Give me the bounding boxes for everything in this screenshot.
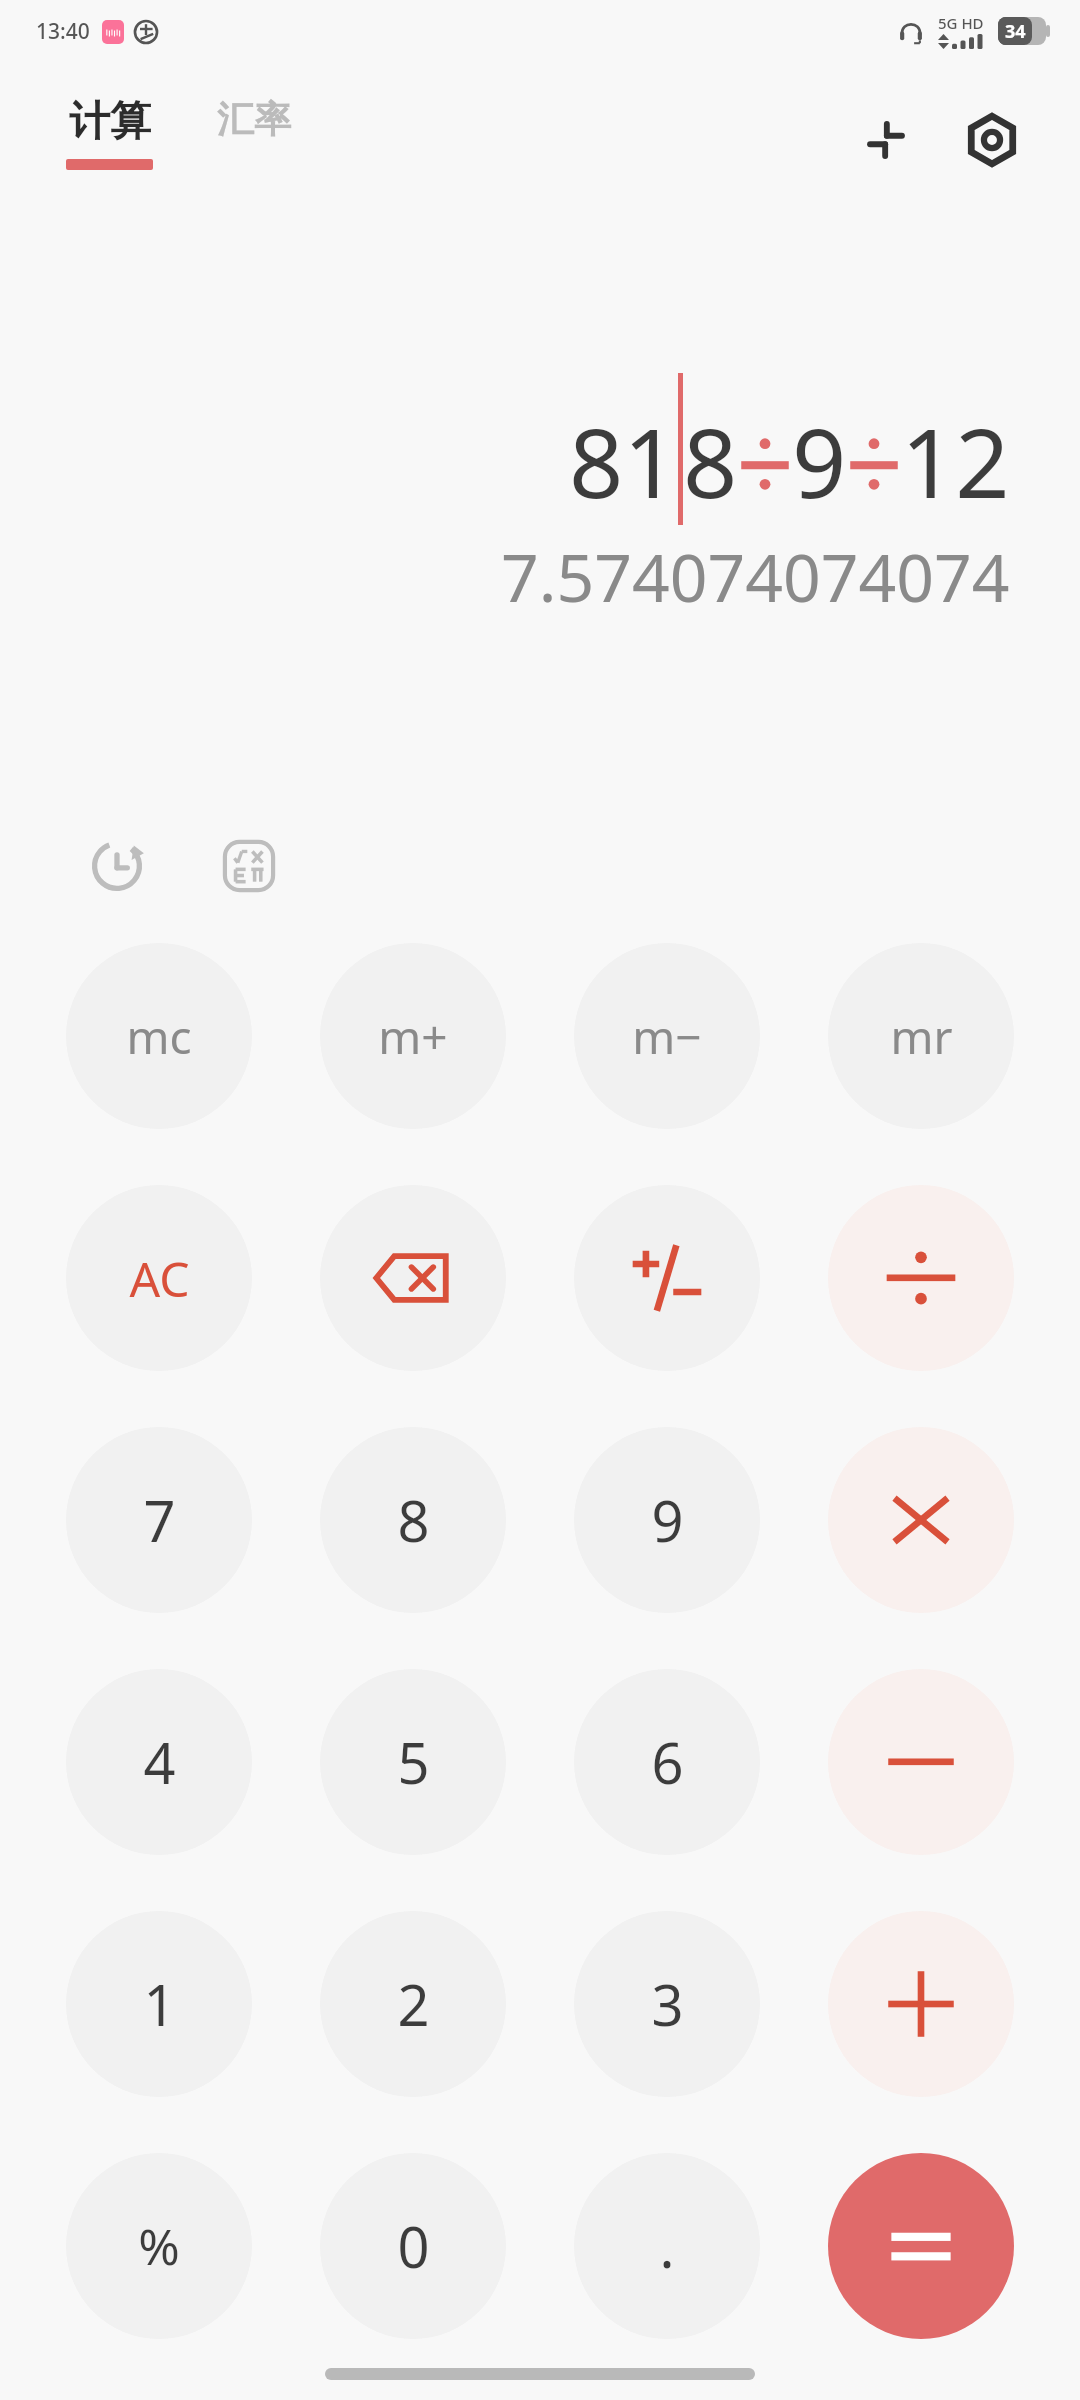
staticText: 34 xyxy=(1005,19,1026,44)
button[interactable]: 7 xyxy=(66,1427,252,1613)
button[interactable]: m− xyxy=(574,943,760,1129)
button[interactable]: 9 xyxy=(574,1427,760,1613)
staticText: 2 xyxy=(397,1966,430,2042)
button[interactable]: m+ xyxy=(320,943,506,1129)
button[interactable]: Collapse xyxy=(850,104,922,176)
staticText: m+ xyxy=(378,1005,448,1068)
button[interactable]: Plus xyxy=(828,1911,1014,2097)
button[interactable]: Equals xyxy=(828,2153,1014,2339)
staticText: 3 xyxy=(651,1966,684,2042)
staticText: m− xyxy=(632,1005,702,1068)
button[interactable]: History xyxy=(78,827,156,905)
staticText: 8 xyxy=(397,1482,430,1558)
button[interactable]: Multiply xyxy=(828,1427,1014,1613)
button[interactable]: Scientific xyxy=(210,827,288,905)
button[interactable]: % xyxy=(66,2153,252,2339)
staticText: 4 xyxy=(143,1724,176,1800)
button[interactable]: Backspace xyxy=(320,1185,506,1371)
button[interactable]: 1 xyxy=(66,1911,252,2097)
staticText: % xyxy=(138,2212,180,2280)
staticText: 9 xyxy=(651,1482,684,1558)
staticText: 7.574074074074 xyxy=(501,531,1010,621)
button[interactable]: 3 xyxy=(574,1911,760,2097)
button[interactable]: mc xyxy=(66,943,252,1129)
staticText: 81 xyxy=(569,396,678,525)
staticText: 9 xyxy=(792,396,847,525)
button[interactable]: 6 xyxy=(574,1669,760,1855)
staticText: 汇率 xyxy=(217,96,291,143)
staticText: 0 xyxy=(397,2208,430,2284)
button[interactable]: 8 xyxy=(320,1427,506,1613)
staticText: 8 xyxy=(683,396,738,525)
button[interactable]: 计算 xyxy=(66,96,153,170)
button[interactable]: Divide xyxy=(828,1185,1014,1371)
staticText: 5 xyxy=(397,1724,430,1800)
staticText: 计算 xyxy=(69,96,151,148)
staticText: 12 xyxy=(901,396,1010,525)
button[interactable]: Plus minus xyxy=(574,1185,760,1371)
staticText: 1 xyxy=(143,1966,176,2042)
button[interactable]: 2 xyxy=(320,1911,506,2097)
staticText: 7 xyxy=(143,1482,176,1558)
button[interactable]: . xyxy=(574,2153,760,2339)
button[interactable]: 5 xyxy=(320,1669,506,1855)
button[interactable]: AC xyxy=(66,1185,252,1371)
staticText: . xyxy=(659,2208,675,2284)
staticText: mr xyxy=(890,1005,953,1068)
button[interactable]: Settings xyxy=(956,104,1028,176)
button[interactable]: 4 xyxy=(66,1669,252,1855)
staticText: mc xyxy=(126,1005,192,1068)
staticText: 5G HD xyxy=(938,13,984,33)
staticText: 13:40 xyxy=(36,17,90,46)
button[interactable]: 汇率 xyxy=(217,96,291,143)
button[interactable]: Minus xyxy=(828,1669,1014,1855)
button[interactable]: mr xyxy=(828,943,1014,1129)
button[interactable]: 0 xyxy=(320,2153,506,2339)
staticText: AC xyxy=(129,1246,190,1311)
staticText: 6 xyxy=(651,1724,684,1800)
